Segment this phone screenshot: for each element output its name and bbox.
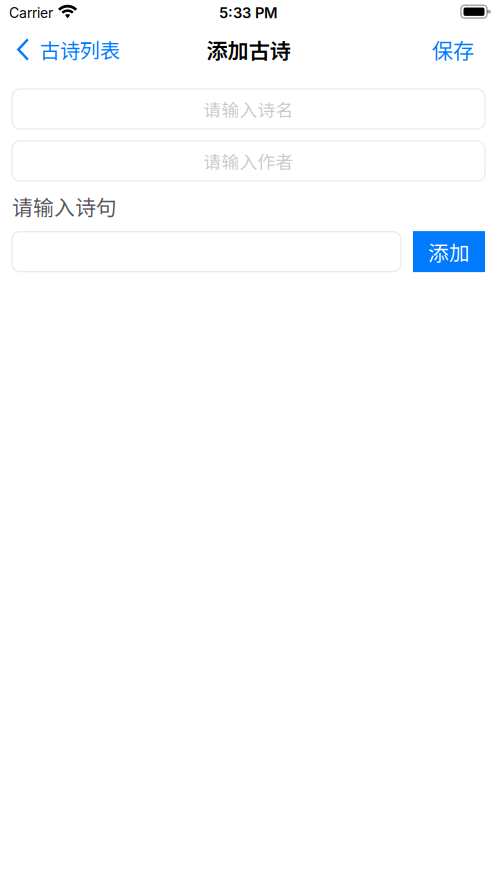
button[interactable]: 保存 — [418, 25, 497, 74]
button[interactable]: 添加 — [413, 231, 485, 272]
staticText: 保存 — [432, 34, 474, 65]
staticText: 请输入作者 — [203, 148, 293, 174]
button[interactable]: 古诗列表 — [0, 26, 132, 73]
staticText: Carrier — [9, 4, 53, 21]
staticText: 请输入诗名 — [203, 96, 293, 122]
staticText: 添加古诗 — [206, 34, 290, 65]
staticText: 请输入诗句 — [12, 191, 117, 221]
staticText: 5:33 PM — [219, 4, 278, 22]
staticText: 古诗列表 — [40, 35, 120, 64]
staticText: 添加 — [428, 237, 470, 267]
